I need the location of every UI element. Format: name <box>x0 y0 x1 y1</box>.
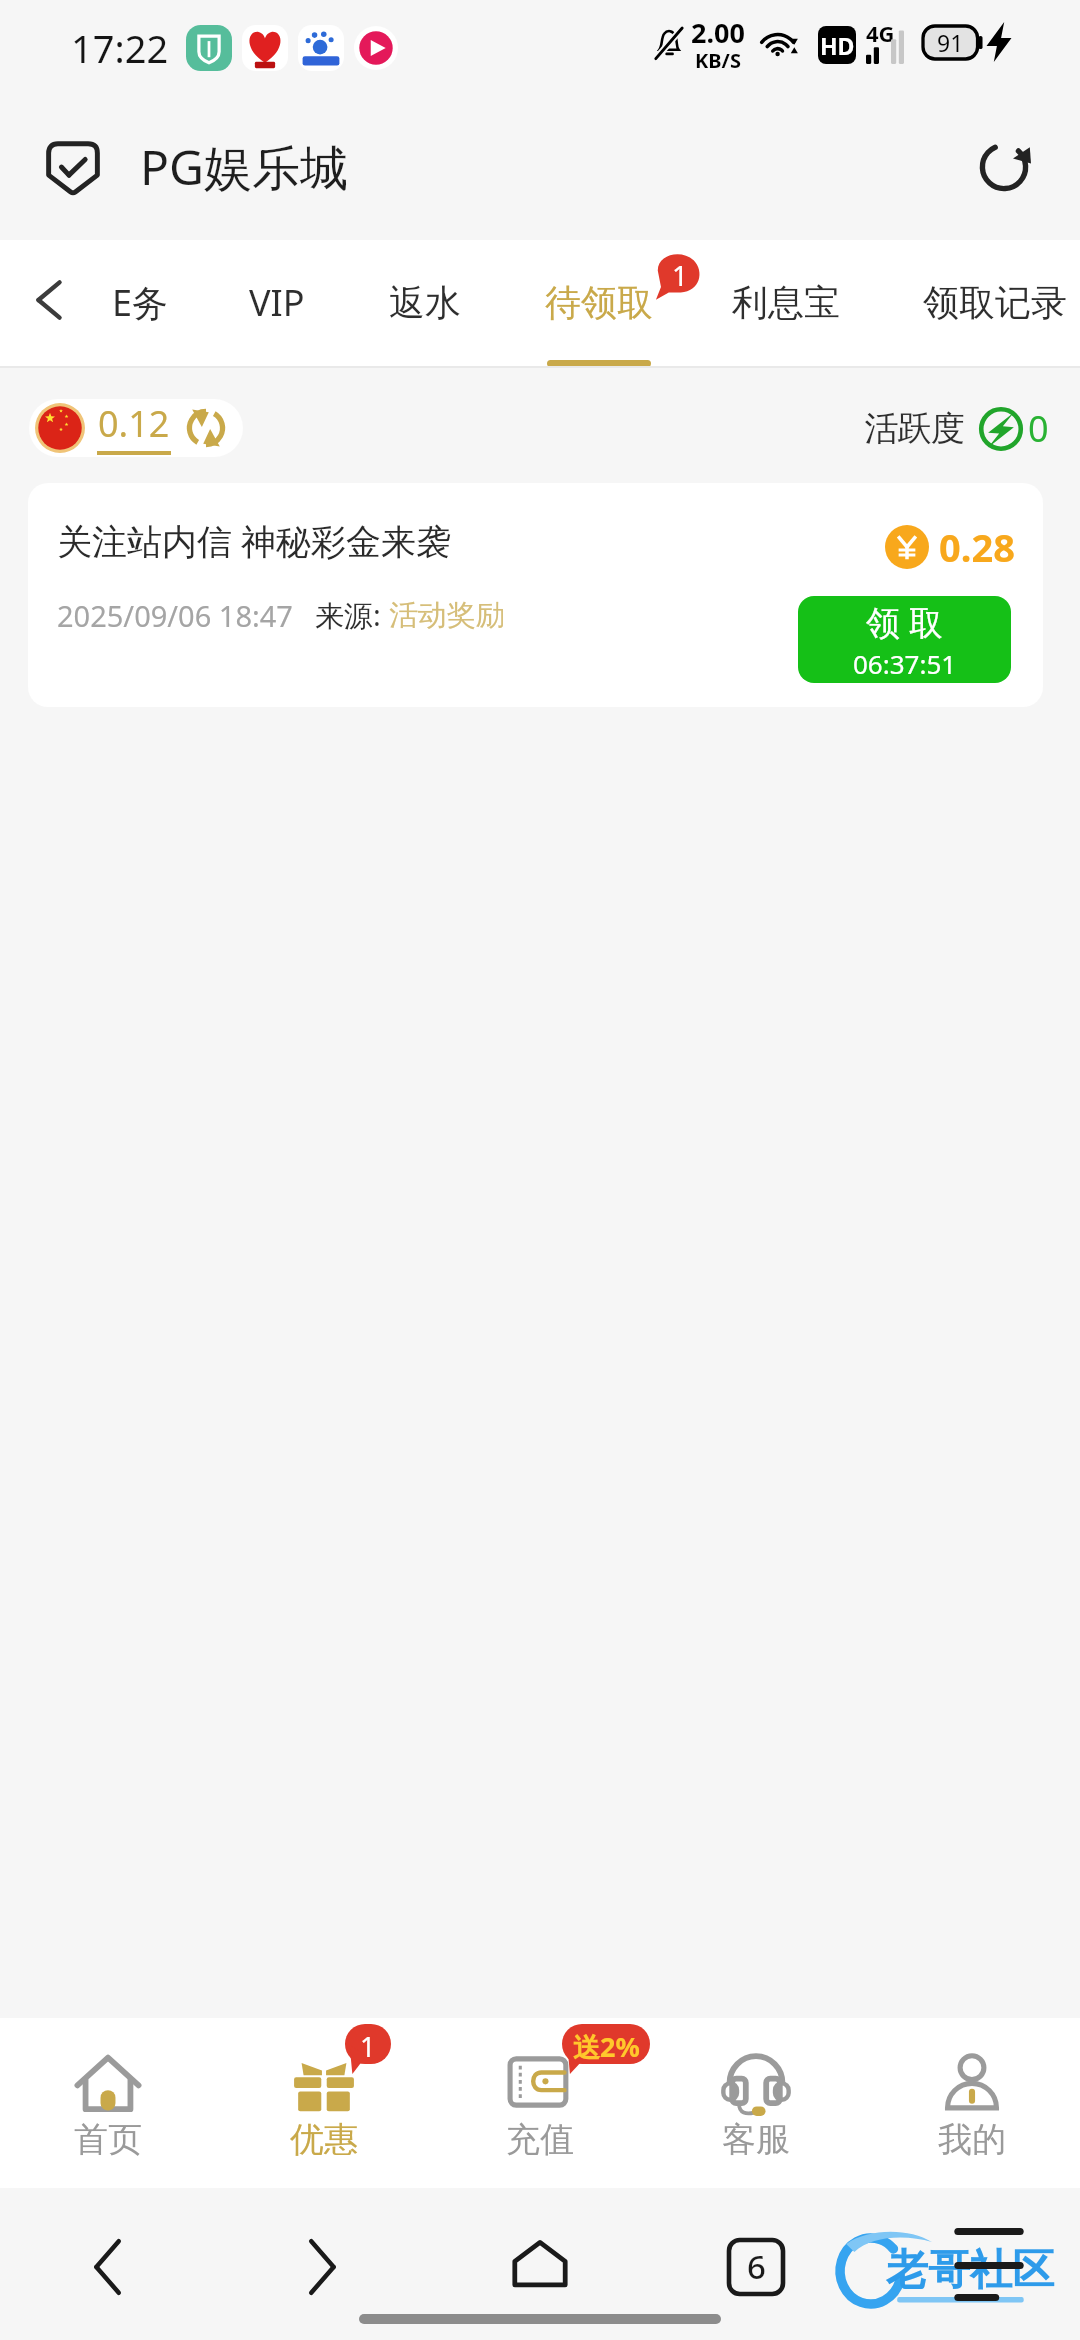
staticText: 91 <box>937 27 964 58</box>
staticText: 2025/09/06 18:47 <box>57 596 293 635</box>
staticText: 1 <box>672 256 689 294</box>
button[interactable]: 领 取 <box>798 596 1011 683</box>
button[interactable]: Security <box>42 136 104 198</box>
staticText: 首页 <box>74 2118 142 2161</box>
staticText: 0 <box>1028 404 1049 453</box>
button[interactable]: 利息宝 <box>676 240 896 368</box>
button[interactable]: 待领取 <box>489 240 709 368</box>
staticText: 返水 <box>389 280 461 325</box>
staticText: 活动奖励 <box>389 597 505 634</box>
staticText: 0.28 <box>939 521 1015 573</box>
button[interactable]: Recents <box>721 2232 791 2302</box>
staticText: 0.12 <box>98 399 170 448</box>
staticText: 06:37:51 <box>853 646 957 681</box>
staticText: 活跃度 <box>865 407 964 450</box>
staticText: KB/S <box>695 47 741 74</box>
button[interactable]: 送2% <box>432 2018 648 2188</box>
staticText: 关注站内信 神秘彩金来袭 <box>57 517 452 565</box>
button[interactable]: 返水 <box>315 240 535 368</box>
staticText: 客服 <box>722 2118 790 2161</box>
button[interactable]: Refresh <box>968 131 1040 203</box>
staticText: 待领取 <box>545 280 653 325</box>
staticText: 4G <box>866 18 895 48</box>
button[interactable]: VIP <box>167 240 387 368</box>
staticText: 领 取 <box>866 599 943 645</box>
button[interactable]: 领取记录 <box>885 240 1080 368</box>
staticText: HD <box>820 30 855 61</box>
button[interactable]: 1 <box>216 2018 432 2188</box>
button[interactable]: Back <box>18 269 80 331</box>
button[interactable]: Back <box>72 2232 142 2302</box>
staticText: 2.00 <box>691 14 745 51</box>
button[interactable]: Home <box>505 2232 575 2302</box>
button[interactable]: 0.12 <box>29 399 243 457</box>
staticText: 6 <box>747 2244 766 2289</box>
staticText: 1 <box>360 2028 376 2065</box>
staticText: 充值 <box>506 2118 574 2161</box>
staticText: 老哥社区 <box>886 2244 1054 2297</box>
button[interactable]: 关注站内信 神秘彩金来袭 <box>28 483 1043 707</box>
staticText: 17:22 <box>71 22 169 74</box>
button[interactable]: 客服 <box>648 2018 864 2188</box>
staticText: 我的 <box>938 2118 1006 2161</box>
button[interactable]: 我的 <box>864 2018 1080 2188</box>
staticText: VIP <box>249 278 305 327</box>
staticText: E务 <box>112 278 169 327</box>
staticText: 来源: <box>315 595 389 635</box>
button[interactable]: 活跃度 <box>865 404 1049 453</box>
staticText: 领取记录 <box>923 280 1067 325</box>
button[interactable]: E务 <box>30 240 250 368</box>
staticText: 利息宝 <box>732 280 840 325</box>
staticText: PG娱乐城 <box>140 134 348 200</box>
staticText: 优惠 <box>290 2118 358 2161</box>
button[interactable]: Forward <box>288 2232 358 2302</box>
staticText: 送2% <box>573 2028 640 2065</box>
button[interactable]: 首页 <box>0 2018 216 2188</box>
